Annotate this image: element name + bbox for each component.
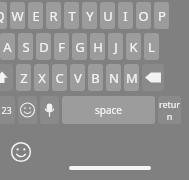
staticText: space <box>95 103 122 117</box>
staticText: M <box>126 69 138 87</box>
button[interactable]: S <box>18 33 33 60</box>
button[interactable]: T <box>64 2 79 29</box>
staticText: Z <box>20 69 28 87</box>
button[interactable]: Emoji <box>18 96 37 124</box>
button[interactable]: return <box>158 96 181 124</box>
staticText: H <box>93 38 103 56</box>
button[interactable]: E <box>28 2 43 29</box>
button[interactable]: A <box>0 33 15 60</box>
button[interactable]: U <box>100 2 115 29</box>
button[interactable]: Backspace <box>142 64 164 91</box>
button[interactable]: Q <box>0 2 7 29</box>
button[interactable]: P <box>154 2 169 29</box>
staticText: Q <box>0 7 5 25</box>
button[interactable]: O <box>136 2 151 29</box>
button[interactable]: Dictation <box>40 96 59 124</box>
staticText: F <box>58 38 65 56</box>
button[interactable]: M <box>124 64 139 91</box>
button[interactable]: B <box>88 64 103 91</box>
staticText: X <box>38 69 46 87</box>
staticText: R <box>49 7 58 25</box>
staticText: S <box>22 38 30 56</box>
staticText: V <box>74 69 82 87</box>
button[interactable]: G <box>72 33 87 60</box>
button[interactable]: F <box>54 33 69 60</box>
button[interactable]: Shift <box>0 64 13 91</box>
staticText: E <box>32 7 40 25</box>
button[interactable]: D <box>36 33 51 60</box>
staticText: C <box>55 69 64 87</box>
staticText: 123 <box>0 104 12 116</box>
staticText: J <box>114 38 118 56</box>
staticText: O <box>138 7 149 25</box>
button[interactable]: L <box>144 33 159 60</box>
staticText: T <box>68 7 76 25</box>
button[interactable]: C <box>52 64 67 91</box>
button[interactable]: W <box>10 2 25 29</box>
staticText: Y <box>86 7 94 25</box>
button[interactable]: K <box>126 33 141 60</box>
staticText: U <box>103 7 113 25</box>
button[interactable]: space <box>62 96 155 124</box>
staticText: N <box>109 69 119 87</box>
button[interactable]: R <box>46 2 61 29</box>
staticText: A <box>3 38 12 56</box>
staticText: G <box>75 38 85 56</box>
button[interactable]: H <box>90 33 105 60</box>
staticText: D <box>39 38 49 56</box>
staticText: L <box>148 38 155 56</box>
staticText: W <box>11 7 24 25</box>
button[interactable]: I <box>118 2 133 29</box>
button[interactable]: Y <box>82 2 97 29</box>
staticText: B <box>91 69 100 87</box>
button[interactable]: 123 <box>0 96 15 124</box>
button[interactable]: N <box>106 64 121 91</box>
button[interactable]: Emoji <box>8 139 34 165</box>
button[interactable]: V <box>70 64 85 91</box>
staticText: K <box>129 38 138 56</box>
button[interactable]: J <box>108 33 123 60</box>
staticText: return <box>158 98 181 122</box>
button[interactable]: X <box>34 64 49 91</box>
staticText: P <box>158 7 166 25</box>
staticText: I <box>123 7 128 25</box>
button[interactable]: Z <box>16 64 31 91</box>
